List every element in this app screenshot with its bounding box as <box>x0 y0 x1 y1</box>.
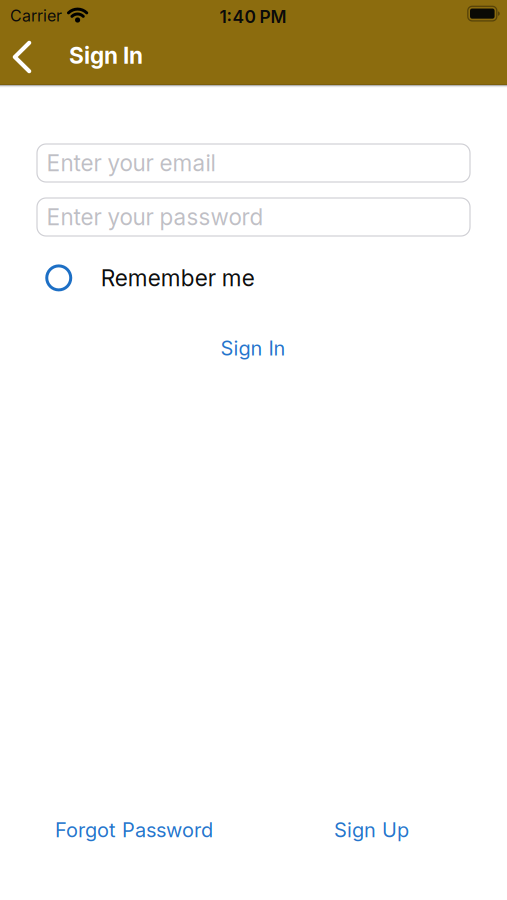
staticText: Carrier <box>10 6 62 25</box>
staticText <box>46 150 52 176</box>
staticText: Forgot Password <box>55 818 213 842</box>
button[interactable]: Forgot Password <box>55 818 213 842</box>
staticText: Enter your password <box>46 204 263 230</box>
textField[interactable] <box>46 204 470 230</box>
staticText: 1:40 PM <box>219 7 286 27</box>
button[interactable]: Sign Up <box>334 818 409 842</box>
button[interactable]: Back <box>8 37 38 77</box>
staticText: Sign In <box>220 336 285 360</box>
button[interactable]: Sign In <box>220 336 285 360</box>
staticText: Sign In <box>69 42 143 69</box>
textField[interactable] <box>46 150 470 176</box>
staticText: Remember me <box>101 264 255 291</box>
button[interactable]: Remember me <box>47 264 367 291</box>
staticText: Enter your email <box>46 150 215 176</box>
staticText: Sign Up <box>334 818 409 842</box>
staticText <box>46 204 52 230</box>
